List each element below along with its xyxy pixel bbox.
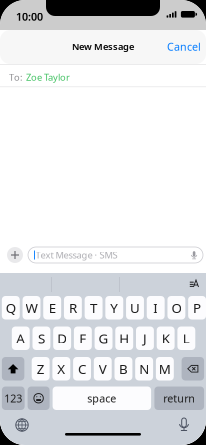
staticText: Zoe Taylor: [26, 71, 70, 83]
button[interactable]: S: [32, 326, 50, 350]
button[interactable]: T: [85, 296, 102, 319]
button[interactable]: K: [157, 326, 175, 350]
button[interactable]: B: [114, 357, 132, 380]
button[interactable]: Z: [32, 357, 50, 380]
staticText: V: [99, 360, 107, 378]
staticText: T: [90, 299, 97, 317]
button[interactable]: G: [95, 326, 112, 350]
staticText: Q: [6, 299, 16, 317]
button[interactable]: Emoji: [28, 386, 50, 410]
button[interactable]: D: [53, 326, 71, 350]
staticText: New Message: [72, 40, 134, 53]
button[interactable]: Next keyboard: [11, 414, 33, 436]
staticText: X: [57, 360, 65, 378]
staticText: To:: [9, 71, 23, 83]
button[interactable]: R: [64, 296, 82, 319]
button[interactable]: C: [73, 357, 91, 380]
staticText: L: [183, 329, 190, 347]
button[interactable]: Formatting: [184, 275, 204, 293]
staticText: J: [143, 329, 147, 347]
staticText: Cancel: [167, 39, 201, 54]
button[interactable]: M: [156, 357, 174, 380]
button[interactable]: H: [115, 326, 133, 350]
staticText: M: [159, 360, 171, 378]
staticText: N: [139, 360, 149, 378]
staticText: O: [171, 299, 181, 317]
button[interactable]: Cancel: [159, 40, 206, 53]
staticText: A: [16, 329, 25, 347]
button[interactable]: Dictate: [173, 414, 195, 436]
button[interactable]: I: [147, 296, 165, 319]
button[interactable]: A: [12, 326, 30, 350]
button[interactable]: J: [136, 326, 154, 350]
staticText: I: [153, 299, 158, 317]
button[interactable]: P: [188, 296, 206, 319]
button[interactable]: F: [74, 326, 92, 350]
button[interactable]: Numbers: [2, 386, 25, 410]
button[interactable]: space: [53, 386, 151, 410]
staticText: S: [38, 329, 45, 347]
staticText: C: [78, 360, 86, 378]
staticText: return: [163, 391, 195, 405]
button[interactable]: Y: [105, 296, 123, 319]
staticText: R: [69, 299, 77, 317]
staticText: 123: [4, 391, 22, 405]
staticText: D: [57, 329, 67, 347]
button[interactable]: Add attachment: [7, 247, 23, 263]
staticText: P: [193, 299, 201, 317]
staticText: E: [49, 299, 56, 317]
staticText: G: [98, 329, 108, 347]
button[interactable]: return: [154, 386, 204, 410]
button[interactable]: X: [52, 357, 70, 380]
staticText: B: [119, 360, 128, 378]
button[interactable]: V: [94, 357, 112, 380]
button[interactable]: Shift: [2, 357, 24, 380]
staticText: U: [130, 299, 140, 317]
staticText: F: [79, 329, 86, 347]
button[interactable]: L: [177, 326, 195, 350]
button[interactable]: Delete: [182, 357, 204, 380]
button[interactable]: E: [43, 296, 61, 319]
button[interactable]: U: [126, 296, 144, 319]
staticText: 10:00: [16, 9, 43, 24]
button[interactable]: Q: [2, 296, 20, 319]
staticText: Z: [37, 360, 45, 378]
staticText: Text Message · SMS: [35, 249, 117, 261]
button[interactable]: O: [167, 296, 185, 319]
button[interactable]: W: [23, 296, 40, 319]
staticText: space: [87, 391, 116, 405]
staticText: H: [119, 329, 129, 347]
button[interactable]: N: [135, 357, 153, 380]
staticText: Y: [110, 299, 118, 317]
staticText: K: [162, 329, 170, 347]
staticText: W: [25, 299, 37, 317]
